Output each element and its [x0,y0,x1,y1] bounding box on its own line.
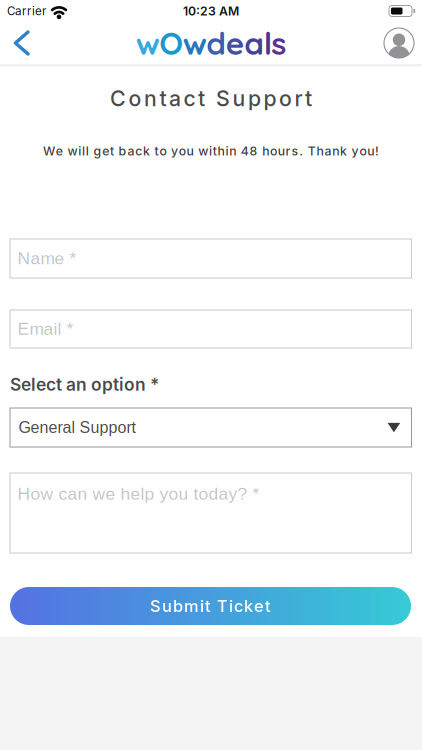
button[interactable]: Submit Ticket [10,587,411,625]
staticText: w [183,23,207,63]
staticText: Email * [17,319,73,338]
staticText: l [264,23,272,63]
textField[interactable]: Name * [10,239,411,278]
staticText: Select an option * [10,374,159,395]
staticText: a [244,23,264,63]
textField[interactable]: Email * [10,310,411,348]
staticText: O [159,23,183,63]
staticText: w [136,23,160,63]
textField[interactable]: How can we help you today? * [10,473,411,553]
staticText: d [206,23,226,63]
staticText: Carrier [7,4,46,18]
staticText: We will get back to you within 48 hours.… [43,144,379,158]
staticText: Contact Support [110,86,312,111]
button[interactable]: General Support [10,408,411,447]
staticText: e [226,23,245,63]
staticText: 10:23 AM [183,4,239,18]
button[interactable]: Back [0,22,45,64]
staticText: General Support [18,419,135,436]
button[interactable]: Profile [378,22,420,64]
staticText: Name * [17,248,76,268]
staticText: How can we help you today? * [17,484,259,503]
staticText: Submit Ticket [150,596,271,616]
staticText: s [271,23,286,63]
